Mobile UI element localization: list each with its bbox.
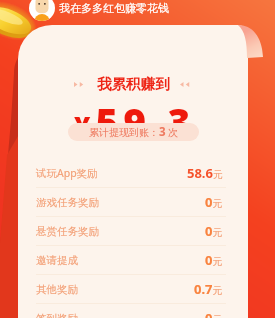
button[interactable]: 用户头像 xyxy=(29,0,55,21)
staticText: 累计提现到账：3 次 xyxy=(89,124,179,140)
staticText: 0元 xyxy=(205,309,223,318)
staticText: ¥59.3 xyxy=(74,95,196,148)
button[interactable]: 其他奖励 xyxy=(36,275,223,303)
staticText: 悬赏任务奖励 xyxy=(36,225,99,238)
button[interactable]: 累计提现到账：3 次 xyxy=(68,123,199,141)
staticText: 游戏任务奖励 xyxy=(36,196,99,209)
staticText: 签到奖励 xyxy=(36,312,78,318)
button[interactable]: 试玩App奖励 xyxy=(36,159,223,187)
button[interactable]: 悬赏任务奖励 xyxy=(36,217,223,245)
staticText: 0元 xyxy=(205,222,223,240)
staticText: 其他奖励 xyxy=(36,283,78,296)
staticText: 0.7元 xyxy=(194,280,223,298)
staticText: 我累积赚到 xyxy=(97,75,170,93)
button[interactable]: 游戏任务奖励 xyxy=(36,188,223,216)
button[interactable]: 我在多多红包赚零花钱 xyxy=(59,1,169,15)
staticText: 58.6元 xyxy=(187,164,223,182)
staticText: 0元 xyxy=(205,193,223,211)
staticText: 邀请提成 xyxy=(36,254,78,267)
staticText: 0元 xyxy=(205,251,223,269)
staticText: 我在多多红包赚零花钱 xyxy=(59,1,169,15)
staticText: 试玩App奖励 xyxy=(36,166,98,180)
button[interactable]: 签到奖励 xyxy=(36,304,223,318)
button[interactable]: 邀请提成 xyxy=(36,246,223,274)
